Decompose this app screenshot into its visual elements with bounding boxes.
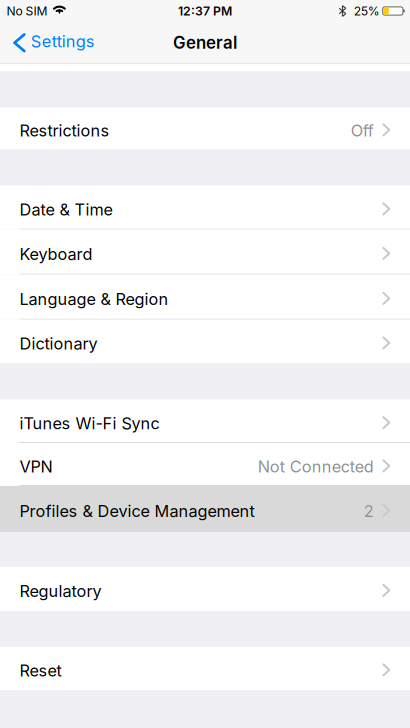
button[interactable]: Settings [0,22,105,63]
staticText: Keyboard [20,244,93,264]
button[interactable]: Restrictions [0,107,410,149]
button[interactable]: Dictionary [0,319,410,363]
staticText: Reset [20,661,62,680]
button[interactable]: Keyboard [0,229,410,274]
staticText: Settings [31,31,95,51]
staticText: Regulatory [20,581,102,601]
button[interactable]: iTunes Wi-Fi Sync [0,399,410,443]
staticText: 2 [364,501,374,521]
staticText: No SIM [6,4,47,18]
button[interactable]: Reset [0,647,410,690]
staticText: Off [351,121,374,140]
staticText: Language & Region [20,289,169,309]
button[interactable]: VPN [0,443,410,486]
button[interactable]: Date & Time [0,185,410,229]
staticText: Date & Time [20,200,113,219]
button[interactable]: Regulatory [0,567,410,611]
staticText: iTunes Wi-Fi Sync [20,413,160,433]
staticText: Dictionary [20,334,98,353]
button[interactable]: Profiles & Device Management [0,486,410,532]
staticText: Restrictions [20,121,110,140]
staticText: General [173,33,237,53]
button[interactable]: Language & Region [0,274,410,319]
staticText: VPN [20,457,53,476]
staticText: 12:37 PM [178,4,232,18]
staticText: 25% [354,4,380,18]
staticText: Not Connected [258,457,374,476]
staticText: Profiles & Device Management [20,501,255,521]
